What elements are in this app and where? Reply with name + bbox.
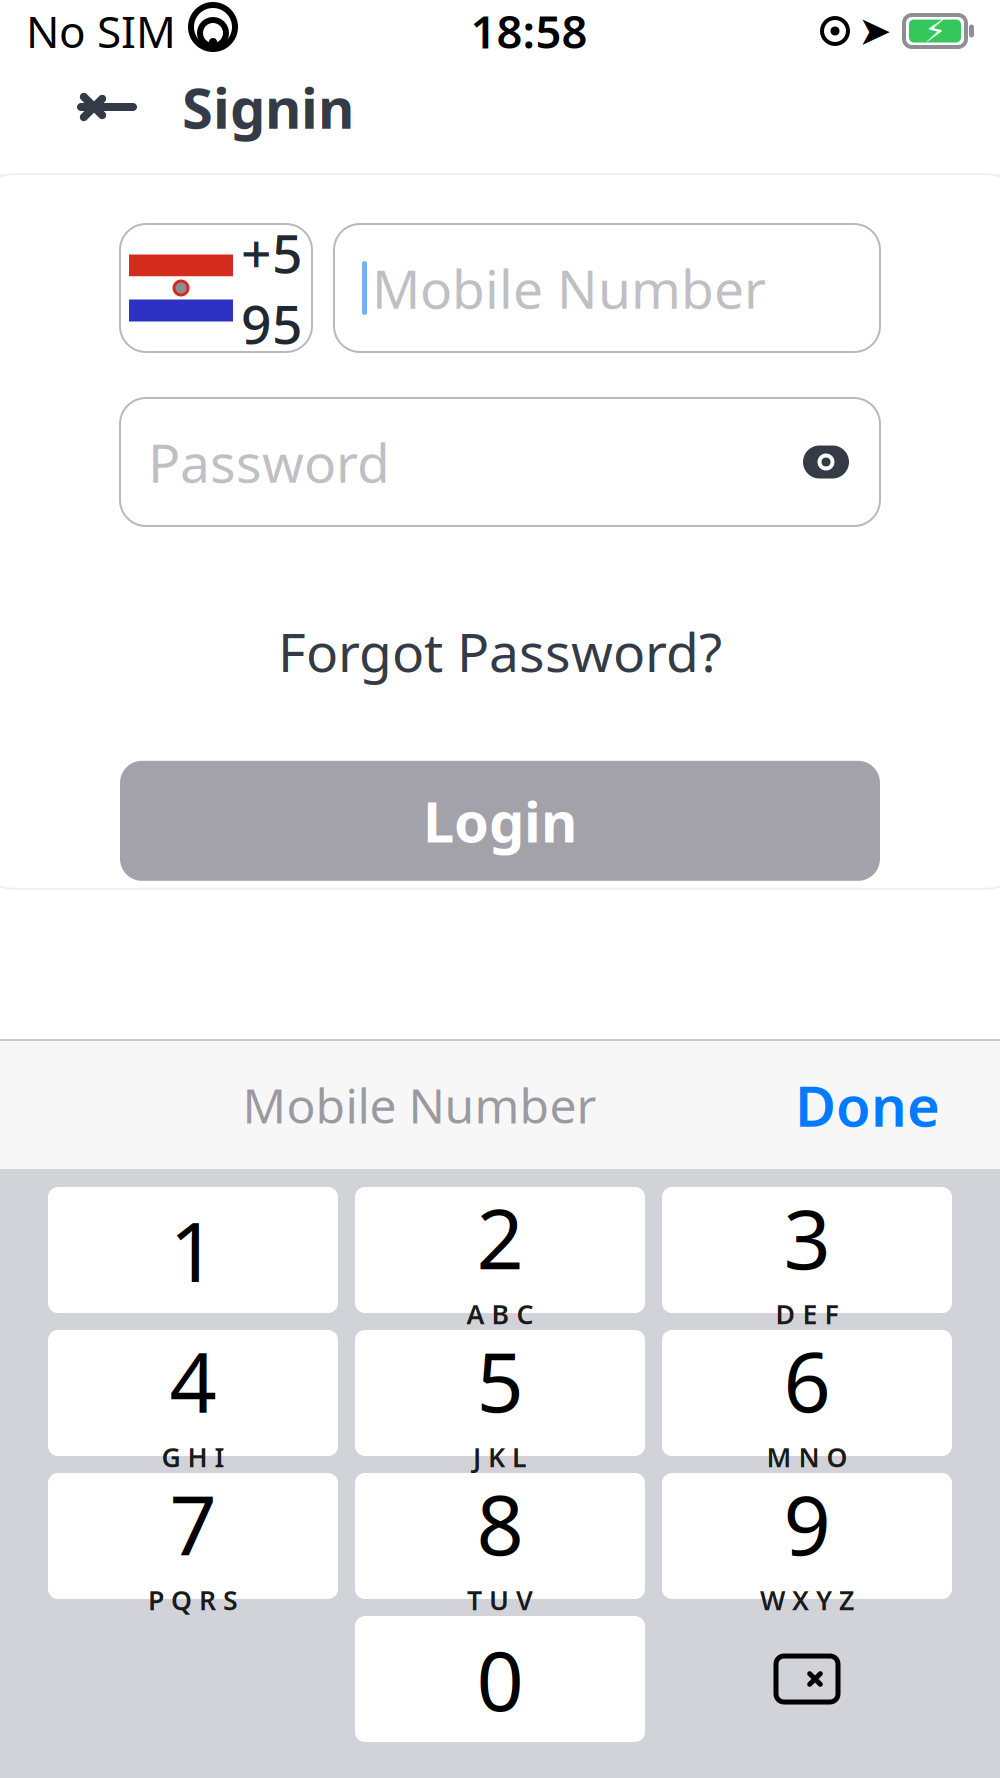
staticText: Forgot Password? [278,616,722,687]
button[interactable]: 5 [355,1330,645,1456]
staticText: 8 [476,1468,523,1578]
staticText: Mobile Number [242,1073,596,1137]
staticText: Password [148,427,390,497]
button[interactable]: +595 [120,224,312,352]
button[interactable]: Password [120,398,880,526]
staticText: 7 [169,1468,216,1578]
staticText: 1 [169,1195,216,1305]
button[interactable]: Forgot Password? [254,604,746,699]
button[interactable]: Login [120,761,880,881]
button[interactable]: 7 [48,1473,338,1599]
staticText: Signin [182,70,354,144]
staticText: D E F [775,1296,838,1332]
staticText: W X Y Z [760,1582,854,1618]
staticText: 2 [476,1182,523,1292]
staticText: J K L [473,1439,527,1475]
staticText: G H I [161,1439,224,1475]
staticText: 18:58 [470,1,587,61]
staticText: 3 [783,1182,830,1292]
button[interactable]: Mobile Number [334,224,880,352]
staticText: 4 [169,1325,216,1435]
staticText: A B C [466,1296,533,1332]
staticText: Login [423,784,577,858]
staticText: ➤ [858,8,892,54]
staticText: T U V [467,1582,533,1618]
staticText: P Q R S [148,1582,238,1618]
button[interactable]: 9 [662,1473,952,1599]
staticText: No SIM [26,2,176,60]
staticText: ⚡︎ [924,13,946,49]
staticText: M N O [766,1439,847,1475]
staticText: Mobile Number [372,253,766,323]
button[interactable]: Done [779,1058,956,1152]
staticText: Done [795,1068,940,1142]
staticText: 5 [476,1325,523,1435]
button[interactable]: 3 [662,1187,952,1313]
button[interactable]: Delete [662,1616,952,1742]
button[interactable]: 8 [355,1473,645,1599]
staticText: 6 [783,1325,830,1435]
button[interactable]: 1 [48,1187,338,1313]
button[interactable]: Back [62,72,152,142]
button[interactable]: 4 [48,1330,338,1456]
staticText: +595 [241,217,303,359]
staticText: 0 [476,1624,523,1734]
button[interactable]: 2 [355,1187,645,1313]
staticText: 9 [783,1468,830,1578]
button[interactable]: 0 [355,1616,645,1742]
button[interactable]: 6 [662,1330,952,1456]
